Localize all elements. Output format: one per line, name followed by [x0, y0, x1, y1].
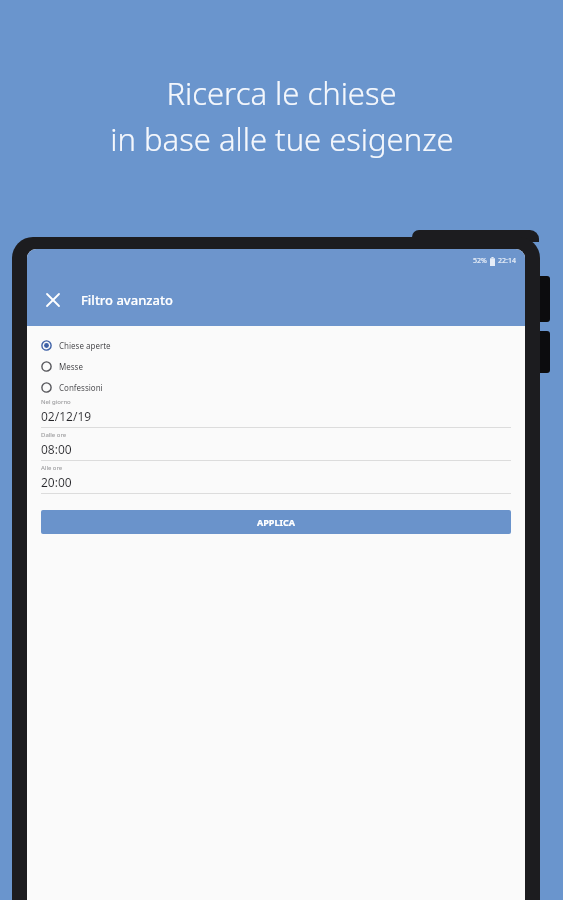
staticText: Confessioni: [59, 382, 103, 393]
staticText: in base alle tue esigenze: [110, 118, 454, 160]
button[interactable]: Confessioni: [41, 377, 511, 398]
staticText: Alle ore: [41, 464, 63, 472]
staticText: Chiese aperte: [59, 340, 111, 351]
button[interactable]: Messe: [41, 356, 511, 377]
staticText: 02/12/19: [41, 408, 92, 424]
staticText: Ricerca le chiese: [166, 72, 397, 114]
staticText: 52%: [473, 256, 487, 266]
staticText: 22:14: [498, 256, 516, 266]
staticText: Nel giorno: [41, 398, 71, 406]
button[interactable]: Chiudi: [38, 285, 68, 315]
staticText: 20:00: [41, 474, 72, 490]
button[interactable]: Chiese aperte: [41, 335, 511, 356]
staticText: APPLICA: [257, 516, 295, 528]
staticText: Dalle ore: [41, 431, 67, 439]
staticText: Filtro avanzato: [81, 291, 173, 309]
staticText: 08:00: [41, 441, 72, 457]
staticText: Messe: [59, 361, 83, 372]
button[interactable]: APPLICA: [41, 510, 511, 534]
